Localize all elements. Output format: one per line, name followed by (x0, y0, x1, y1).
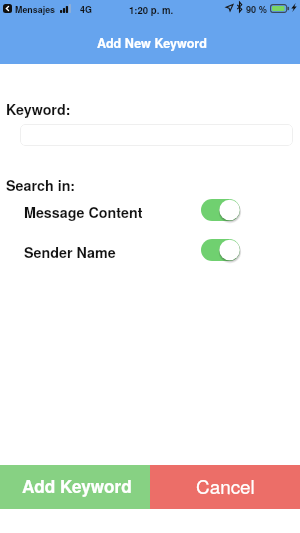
staticText: Keyword: (6, 99, 71, 119)
button[interactable]: Add Keyword (0, 465, 150, 509)
button[interactable]: Toggle (201, 239, 241, 261)
button[interactable]: Sender Name (0, 239, 300, 261)
button[interactable]: Cancel (150, 465, 300, 509)
staticText: 90 % (246, 3, 267, 16)
staticText: Add Keyword (22, 474, 132, 499)
staticText: 1:20 p. m. (129, 3, 174, 17)
button[interactable]: Toggle (201, 199, 241, 221)
staticText: Mensajes (15, 3, 56, 16)
button[interactable]: Message Content (0, 199, 300, 221)
staticText: Search in: (6, 175, 76, 195)
staticText: Add New Keyword (97, 34, 207, 52)
staticText: Sender Name (24, 242, 116, 262)
staticText: Message Content (24, 202, 143, 222)
staticText: Cancel (196, 472, 255, 499)
button[interactable]: Back to Mensajes (3, 4, 12, 13)
button[interactable] (20, 124, 293, 146)
staticText: 4G (80, 3, 92, 16)
